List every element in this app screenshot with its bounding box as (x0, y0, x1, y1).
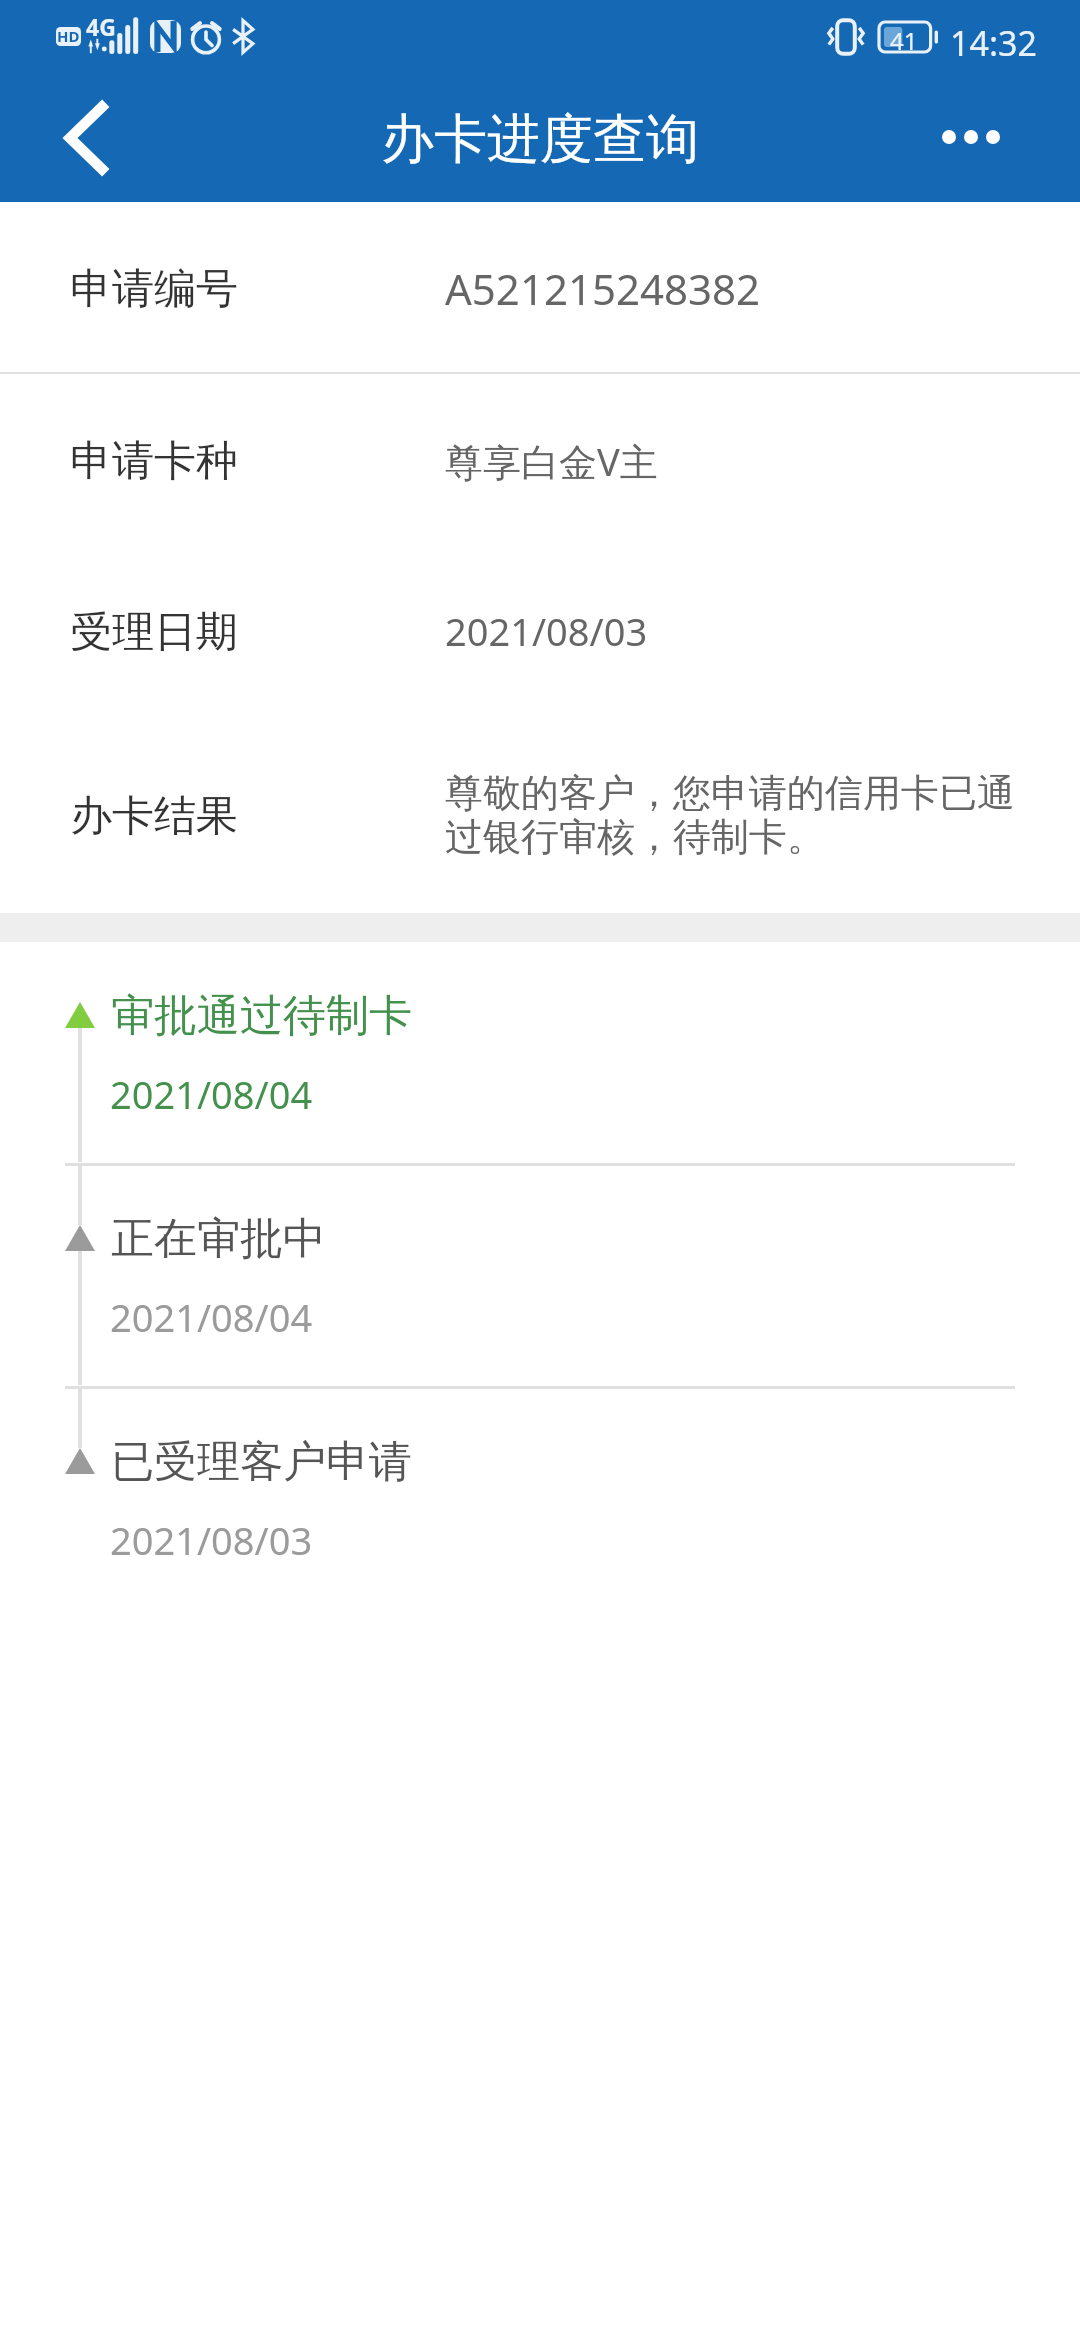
staticText: 办卡进度查询 (381, 106, 699, 173)
button[interactable]: 办卡结果 (0, 715, 1080, 913)
staticText: 办卡结果 (70, 790, 238, 843)
staticText: 2021/08/03 (110, 1514, 313, 1566)
button[interactable]: 受理日期 (0, 545, 1080, 715)
staticText: HD (57, 26, 80, 45)
staticText: A521215248382 (445, 260, 761, 317)
staticText: 2021/08/03 (445, 605, 648, 657)
button[interactable]: 正在审批中 (0, 1165, 1080, 1385)
staticText: 已受理客户申请 (111, 1435, 412, 1489)
staticText: 尊敬的客户，您申请的信用卡已通过银行审核，待制卡。 (445, 769, 1020, 861)
button[interactable]: Back (0, 72, 170, 202)
staticText: 正在审批中 (111, 1212, 326, 1266)
staticText: 审批通过待制卡 (111, 989, 412, 1043)
staticText: 申请卡种 (70, 435, 238, 488)
button[interactable]: 申请编号 (0, 202, 1080, 372)
staticText: 14:32 (950, 20, 1037, 66)
staticText: 受理日期 (70, 606, 238, 659)
staticText: 尊享白金V主 (445, 435, 658, 487)
staticText: 41 (890, 24, 918, 54)
button[interactable]: 审批通过待制卡 (0, 942, 1080, 1162)
button[interactable]: 已受理客户申请 (0, 1388, 1080, 1608)
staticText: 4G (86, 11, 116, 42)
staticText: 2021/08/04 (110, 1291, 313, 1343)
button[interactable]: 申请卡种 (0, 374, 1080, 545)
staticText: 2021/08/04 (110, 1068, 313, 1120)
button[interactable]: More options (930, 72, 1080, 202)
staticText: 申请编号 (70, 263, 238, 316)
